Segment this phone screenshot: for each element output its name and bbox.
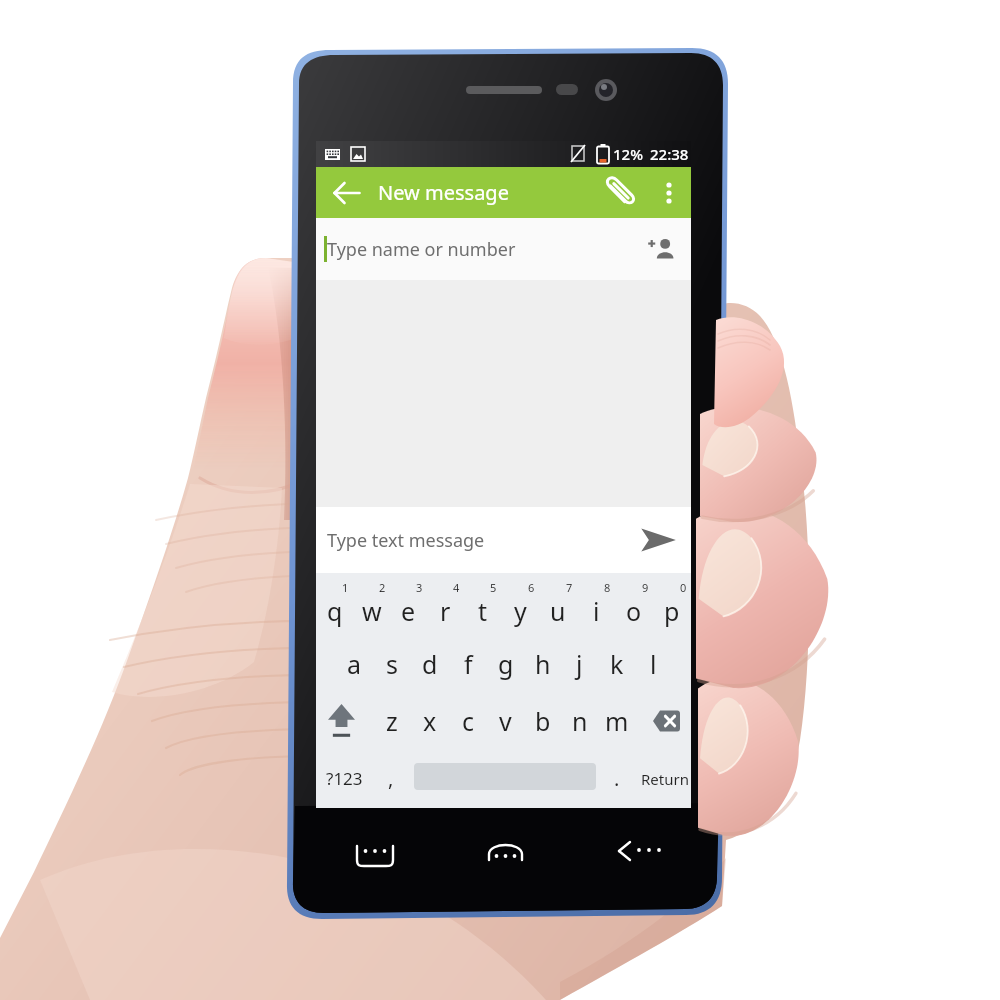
button[interactable]: a: [335, 635, 373, 692]
staticText: 0: [680, 580, 687, 595]
staticText: q: [327, 594, 343, 628]
staticText: p: [664, 594, 680, 628]
staticText: 5: [490, 580, 497, 595]
staticText: 4: [453, 580, 460, 595]
staticText: 2: [379, 580, 386, 595]
staticText: l: [650, 647, 657, 681]
staticText: 22:38: [650, 144, 689, 164]
staticText: ,: [388, 765, 394, 792]
button[interactable]: g: [487, 635, 524, 692]
staticText: r: [440, 594, 451, 628]
staticText: x: [423, 704, 437, 738]
staticText: 8: [604, 580, 611, 595]
button[interactable]: Home: [438, 808, 570, 904]
staticText: h: [535, 647, 551, 681]
button[interactable]: 9: [615, 573, 653, 635]
button[interactable]: x: [411, 692, 449, 749]
staticText: 9: [642, 580, 649, 595]
button[interactable]: s: [373, 635, 411, 692]
staticText: g: [498, 647, 514, 681]
button[interactable]: z: [373, 692, 411, 749]
button[interactable]: Backspace: [635, 692, 691, 749]
button[interactable]: ,: [372, 749, 410, 808]
button[interactable]: Type name or number: [316, 218, 691, 280]
staticText: m: [605, 704, 629, 738]
button[interactable]: Send: [639, 521, 677, 559]
button[interactable]: Attach: [603, 175, 639, 211]
staticText: 1: [342, 580, 349, 595]
button[interactable]: d: [411, 635, 449, 692]
staticText: k: [610, 647, 624, 681]
staticText: Type text message: [327, 528, 485, 553]
button[interactable]: 2: [353, 573, 390, 635]
staticText: a: [347, 647, 362, 681]
button[interactable]: k: [598, 635, 635, 692]
button[interactable]: 7: [539, 573, 577, 635]
button[interactable]: Shift: [316, 692, 373, 749]
button[interactable]: 0: [653, 573, 691, 635]
button[interactable]: 6: [501, 573, 539, 635]
button[interactable]: Back: [316, 167, 691, 218]
button[interactable]: 3: [390, 573, 427, 635]
button[interactable]: n: [561, 692, 598, 749]
staticText: ?123: [326, 767, 363, 790]
staticText: j: [576, 647, 583, 681]
staticText: i: [593, 594, 600, 628]
staticText: z: [386, 704, 398, 738]
staticText: v: [499, 704, 512, 738]
staticText: y: [514, 594, 527, 628]
button[interactable]: ?123: [316, 749, 372, 808]
staticText: u: [550, 594, 566, 628]
button[interactable]: b: [524, 692, 561, 749]
staticText: w: [362, 594, 382, 628]
staticText: Type name or number: [327, 237, 516, 262]
button[interactable]: 5: [464, 573, 501, 635]
button[interactable]: l: [635, 635, 672, 692]
staticText: 3: [416, 580, 423, 595]
button[interactable]: Recent apps: [306, 808, 438, 904]
button[interactable]: .: [596, 749, 638, 808]
button[interactable]: Return: [638, 749, 691, 808]
button[interactable]: More options: [655, 179, 683, 207]
staticText: New message: [378, 179, 509, 206]
button[interactable]: 4: [427, 573, 464, 635]
staticText: d: [422, 647, 438, 681]
staticText: s: [386, 647, 398, 681]
staticText: .: [614, 765, 620, 792]
staticText: Return: [641, 769, 689, 789]
button[interactable]: v: [487, 692, 524, 749]
button[interactable]: h: [524, 635, 561, 692]
staticText: o: [626, 594, 642, 628]
staticText: b: [535, 704, 551, 738]
staticText: f: [464, 647, 473, 681]
button[interactable]: j: [561, 635, 598, 692]
button[interactable]: f: [449, 635, 487, 692]
button[interactable]: Add contact: [645, 233, 677, 265]
button[interactable]: c: [449, 692, 487, 749]
button[interactable]: 8: [577, 573, 615, 635]
staticText: 6: [528, 580, 535, 595]
staticText: t: [478, 594, 488, 628]
staticText: 12%: [613, 144, 643, 164]
staticText: n: [572, 704, 588, 738]
staticText: 7: [566, 580, 573, 595]
staticText: e: [401, 594, 416, 628]
button[interactable]: 1: [316, 573, 353, 635]
staticText: c: [462, 704, 475, 738]
button[interactable]: Back: [332, 178, 362, 208]
button[interactable]: Back: [570, 808, 702, 904]
button[interactable]: m: [598, 692, 635, 749]
button[interactable]: Type text message: [316, 507, 691, 573]
